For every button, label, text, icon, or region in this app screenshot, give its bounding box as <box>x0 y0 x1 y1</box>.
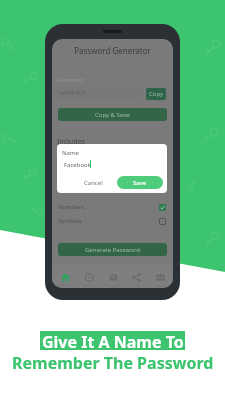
button[interactable]: Numbers <box>58 203 166 211</box>
staticText: Name <box>62 149 79 157</box>
staticText: Copy & Save <box>95 111 130 119</box>
staticText: Copy <box>149 90 164 98</box>
button[interactable]: Passwords <box>102 264 124 288</box>
button[interactable]: Share <box>125 264 147 288</box>
button[interactable]: Save <box>117 176 163 189</box>
staticText: Remember The Password <box>12 352 214 370</box>
staticText: Generate Password <box>85 246 140 254</box>
staticText: Symbols <box>58 217 82 225</box>
button[interactable]: Copy & Save <box>58 108 167 121</box>
button[interactable]: Generate Password <box>58 243 167 256</box>
button[interactable]: About <box>149 264 171 288</box>
staticText: Give It A Name To <box>42 331 184 350</box>
staticText: Numbers <box>58 203 85 211</box>
staticText: 1hR4P3UT <box>57 89 87 97</box>
button[interactable]: Home <box>54 264 76 288</box>
button[interactable]: Cancel <box>70 176 117 189</box>
button[interactable]: History <box>78 264 100 288</box>
staticText: Facebook <box>64 161 91 169</box>
button[interactable]: Copy <box>146 88 166 100</box>
staticText: Includes <box>57 137 85 147</box>
staticText: Password <box>57 76 85 84</box>
staticText: Password Generator <box>74 45 151 56</box>
button[interactable]: Symbols <box>58 217 166 225</box>
staticText: Cancel <box>84 179 103 187</box>
staticText: Save <box>133 179 147 187</box>
